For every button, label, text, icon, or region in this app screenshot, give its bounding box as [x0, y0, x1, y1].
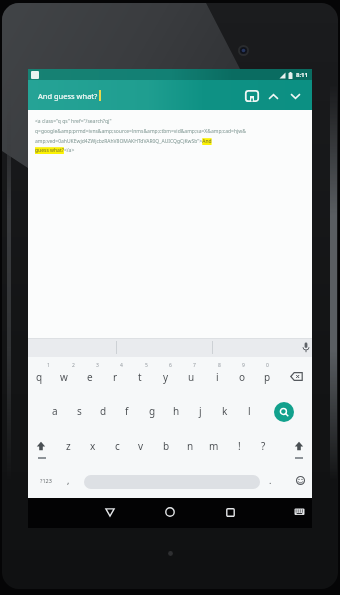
staticText: z — [66, 439, 71, 453]
staticText: a — [52, 404, 58, 418]
button[interactable] — [264, 86, 282, 106]
staticText: 3 — [96, 362, 99, 369]
button[interactable] — [270, 398, 298, 426]
staticText: , — [67, 474, 70, 486]
staticText: s — [77, 404, 82, 418]
button[interactable] — [242, 86, 262, 106]
staticText: n — [187, 439, 194, 453]
staticText: u — [188, 370, 195, 384]
staticText: d — [100, 404, 107, 418]
staticText: r — [113, 370, 118, 384]
button[interactable]: g — [140, 397, 164, 425]
staticText: guess what?</a> — [35, 147, 75, 154]
staticText: c — [115, 439, 120, 453]
button[interactable] — [296, 338, 315, 357]
staticText: 9 — [242, 362, 245, 369]
button[interactable]: b — [154, 432, 178, 460]
button[interactable]: q — [27, 363, 51, 391]
button[interactable]: u — [179, 363, 203, 391]
staticText: 8 — [218, 362, 221, 369]
button[interactable] — [287, 466, 313, 494]
button[interactable] — [156, 498, 184, 526]
staticText: p — [264, 370, 271, 384]
button[interactable]: d — [91, 397, 115, 425]
button[interactable]: y — [154, 363, 178, 391]
button[interactable]: z — [56, 432, 80, 460]
button[interactable]: , — [56, 466, 80, 494]
button[interactable] — [216, 498, 244, 526]
staticText: 8:11 — [296, 71, 308, 79]
staticText: l — [248, 404, 251, 418]
button[interactable]: c — [105, 432, 129, 460]
button[interactable]: n — [178, 432, 202, 460]
button[interactable] — [84, 475, 260, 489]
staticText: 7 — [193, 362, 196, 369]
staticText: 5 — [145, 362, 148, 369]
button[interactable]: ? — [251, 432, 275, 460]
button[interactable]: ! — [227, 432, 251, 460]
button[interactable]: e — [78, 363, 102, 391]
staticText: ! — [238, 439, 241, 453]
staticText: 0 — [266, 362, 269, 369]
button[interactable]: o — [230, 363, 254, 391]
staticText: f — [125, 404, 129, 418]
button[interactable]: j — [188, 397, 212, 425]
staticText: 4 — [120, 362, 123, 369]
staticText: k — [222, 404, 228, 418]
button[interactable]: f — [115, 397, 139, 425]
staticText: 1 — [47, 362, 50, 369]
staticText: o — [239, 370, 246, 384]
staticText: b — [163, 439, 170, 453]
button[interactable]: k — [213, 397, 237, 425]
button[interactable]: v — [129, 432, 153, 460]
button[interactable]: t — [128, 363, 152, 391]
staticText: ? — [261, 439, 266, 453]
button[interactable]: h — [164, 397, 188, 425]
button[interactable]: a — [43, 397, 67, 425]
staticText: e — [87, 370, 93, 384]
button[interactable] — [286, 498, 312, 526]
button[interactable] — [286, 86, 304, 106]
staticText: v — [138, 439, 144, 453]
button[interactable]: ?123 — [34, 466, 58, 494]
staticText: q — [36, 370, 43, 384]
staticText: h — [173, 404, 180, 418]
staticText: g — [149, 404, 156, 418]
button[interactable]: p — [255, 363, 279, 391]
button[interactable]: s — [67, 397, 91, 425]
button[interactable]: i — [205, 363, 229, 391]
button[interactable]: w — [52, 363, 76, 391]
button[interactable]: . — [258, 466, 282, 494]
staticText: m — [209, 439, 219, 453]
staticText: w — [60, 370, 68, 384]
staticText: And guess what? — [38, 91, 98, 101]
staticText: x — [90, 439, 96, 453]
staticText: q=google&amp;prmd=ivns&amp;source=lnms&a… — [35, 128, 246, 135]
staticText: t — [138, 370, 142, 384]
button[interactable] — [283, 362, 309, 390]
staticText: y — [163, 370, 169, 384]
button[interactable] — [287, 432, 311, 460]
staticText: <a class="q qs" href="/search?qj" — [35, 118, 112, 125]
button[interactable]: l — [237, 397, 261, 425]
button[interactable]: m — [202, 432, 226, 460]
button[interactable] — [96, 498, 124, 526]
staticText: ?123 — [40, 477, 52, 484]
staticText: 6 — [169, 362, 172, 369]
button[interactable]: r — [103, 363, 127, 391]
button[interactable]: And guess what? — [38, 90, 101, 101]
staticText: i — [216, 370, 219, 384]
button[interactable] — [29, 432, 53, 460]
button[interactable]: x — [81, 432, 105, 460]
staticText: 2 — [72, 362, 75, 369]
staticText: j — [199, 404, 202, 418]
staticText: . — [269, 474, 272, 486]
staticText: amp;ved=0ahUKEwjd4ZWjcbzRAhV8OMAKHTdVAR0… — [35, 138, 212, 145]
